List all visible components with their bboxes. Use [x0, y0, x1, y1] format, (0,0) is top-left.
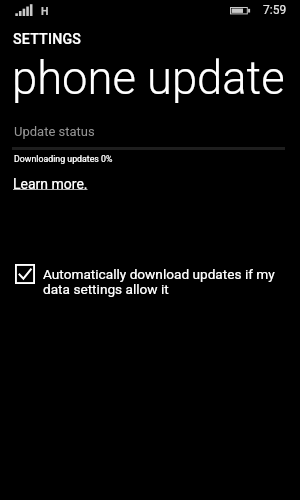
staticText: Downloading updates 0% — [14, 154, 113, 164]
staticText: H — [41, 5, 49, 17]
other: Automatically download updates — [15, 264, 35, 284]
other: Battery — [230, 7, 251, 16]
button[interactable]: Learn more. — [13, 176, 88, 192]
staticText: Learn more. — [13, 176, 88, 192]
staticText: Automatically download updates if my dat… — [43, 266, 290, 297]
staticText: Update status — [14, 124, 95, 139]
staticText: SETTINGS — [13, 31, 82, 48]
staticText: 7:59 — [263, 3, 287, 17]
other: Signal strength — [15, 3, 33, 17]
button[interactable]: Automatically download updates — [0, 259, 300, 300]
staticText: phone update — [12, 52, 285, 105]
